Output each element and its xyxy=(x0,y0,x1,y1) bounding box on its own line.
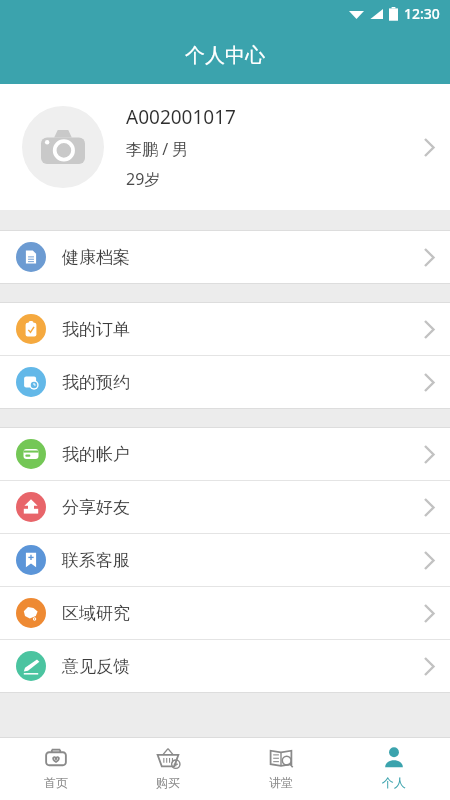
button[interactable]: 我的订单 xyxy=(0,303,450,355)
button[interactable]: A002001017 xyxy=(0,84,450,210)
staticText: 我的订单 xyxy=(62,319,130,340)
staticText: 29岁 xyxy=(126,168,161,190)
button[interactable]: 我的预约 xyxy=(0,356,450,408)
staticText: 首页 xyxy=(44,775,68,790)
staticText: 区域研究 xyxy=(62,603,130,624)
staticText: 分享好友 xyxy=(62,497,130,518)
staticText: 意见反馈 xyxy=(62,656,130,677)
staticText: 我的预约 xyxy=(62,372,130,393)
button[interactable]: 讲堂 xyxy=(224,738,337,800)
staticText: 我的帐户 xyxy=(62,444,130,465)
button[interactable]: 意见反馈 xyxy=(0,640,450,692)
button[interactable]: 分享好友 xyxy=(0,481,450,533)
button[interactable]: 健康档案 xyxy=(0,231,450,283)
staticText: 购买 xyxy=(156,775,180,790)
button[interactable]: 我的帐户 xyxy=(0,428,450,480)
button[interactable]: 个人 xyxy=(337,738,450,800)
staticText: 个人 xyxy=(382,775,406,790)
button[interactable]: 区域研究 xyxy=(0,587,450,639)
staticText: A002001017 xyxy=(126,104,236,130)
staticText: 联系客服 xyxy=(62,550,130,571)
staticText: 李鹏 / 男 xyxy=(126,138,189,160)
staticText: 个人中心 xyxy=(185,43,265,68)
staticText: 讲堂 xyxy=(269,775,293,790)
staticText: 12:30 xyxy=(404,4,440,23)
button[interactable]: 购买 xyxy=(112,738,224,800)
button[interactable]: 首页 xyxy=(0,738,112,800)
staticText: 健康档案 xyxy=(62,247,130,268)
button[interactable]: 联系客服 xyxy=(0,534,450,586)
